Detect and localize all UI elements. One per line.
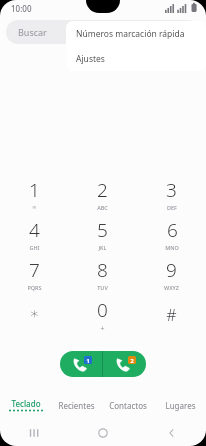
staticText: Lugares bbox=[165, 400, 196, 411]
button[interactable]: Recientes bbox=[51, 396, 102, 414]
button[interactable]: 0 bbox=[68, 296, 137, 336]
staticText: 7 bbox=[29, 257, 40, 283]
staticText: 9 bbox=[166, 257, 177, 283]
staticText: 0 bbox=[97, 297, 108, 323]
staticText: Ajustes bbox=[76, 53, 105, 65]
staticText: 2 bbox=[130, 357, 134, 364]
staticText: Buscar bbox=[18, 26, 47, 38]
staticText: DEF bbox=[167, 204, 177, 211]
button[interactable]: Llamar con SIM 1 bbox=[60, 351, 102, 377]
staticText: 3 bbox=[166, 177, 177, 203]
button[interactable]: Lugares bbox=[154, 396, 206, 414]
staticText: TUV bbox=[97, 284, 108, 291]
staticText: Números marcación rápida bbox=[76, 28, 185, 40]
staticText: PQRS bbox=[27, 284, 42, 291]
staticText: 1 bbox=[29, 177, 40, 203]
button[interactable]: Contactos bbox=[102, 396, 154, 414]
button[interactable]: # bbox=[137, 296, 206, 336]
button[interactable]: ∗ bbox=[0, 296, 68, 336]
staticText: 6 bbox=[167, 217, 178, 243]
button[interactable]: Ajustes bbox=[66, 46, 206, 71]
staticText: ∗ bbox=[29, 304, 40, 323]
button[interactable]: Recientes bbox=[0, 420, 68, 446]
staticText: MNO bbox=[165, 244, 179, 251]
button[interactable]: 5 bbox=[68, 216, 137, 256]
button[interactable]: 3 bbox=[137, 176, 206, 216]
staticText: + bbox=[100, 324, 105, 334]
staticText: JKL bbox=[98, 244, 107, 251]
staticText: WXYZ bbox=[164, 284, 179, 291]
staticText: 2 bbox=[97, 177, 108, 203]
button[interactable]: Buscar bbox=[6, 20, 200, 44]
button[interactable]: 6 bbox=[137, 216, 206, 256]
staticText: 1 bbox=[86, 357, 90, 364]
staticText: Teclado bbox=[11, 398, 41, 409]
button[interactable]: 8 bbox=[68, 256, 137, 296]
staticText: GHI bbox=[29, 244, 40, 251]
staticText: ∞ bbox=[32, 204, 37, 210]
staticText: # bbox=[166, 304, 177, 326]
button[interactable]: 1 bbox=[0, 176, 68, 216]
button[interactable]: Atrás bbox=[137, 420, 206, 446]
staticText: Contactos bbox=[109, 400, 147, 411]
button[interactable]: 7 bbox=[0, 256, 68, 296]
staticText: 10:00 bbox=[11, 3, 32, 14]
button[interactable]: 9 bbox=[137, 256, 206, 296]
staticText: 4 bbox=[29, 217, 40, 243]
staticText: 8 bbox=[97, 257, 108, 283]
staticText: Recientes bbox=[58, 400, 95, 411]
button[interactable]: Llamar con SIM 2 bbox=[103, 351, 146, 377]
button[interactable]: Números marcación rápida bbox=[66, 21, 206, 46]
staticText: 5 bbox=[97, 217, 108, 243]
button[interactable]: 4 bbox=[0, 216, 68, 256]
button[interactable]: 2 bbox=[68, 176, 137, 216]
staticText: ABC bbox=[97, 204, 108, 211]
button[interactable]: Teclado bbox=[0, 396, 51, 414]
button[interactable]: Inicio bbox=[68, 420, 137, 446]
